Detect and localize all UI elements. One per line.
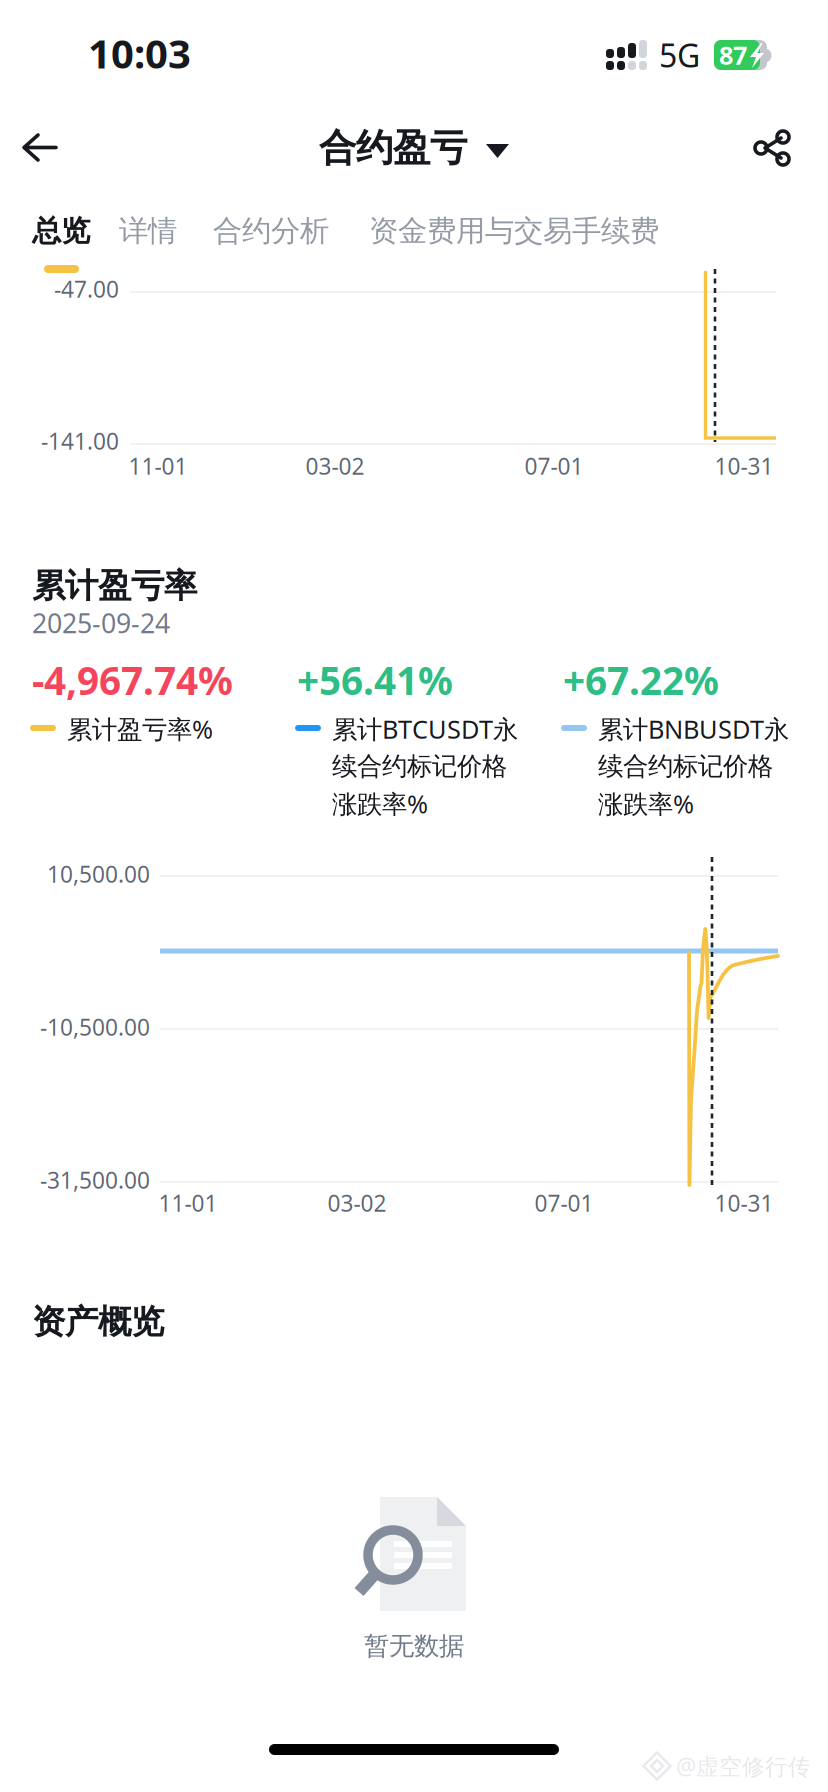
staticText: 10-31 bbox=[714, 451, 773, 481]
staticText: 详情 bbox=[119, 213, 177, 249]
staticText: 10-31 bbox=[714, 1188, 773, 1218]
staticText: -31,500.00 bbox=[40, 1165, 150, 1195]
staticText: 累计盈亏率 bbox=[32, 565, 197, 606]
staticText: 03-02 bbox=[305, 451, 364, 481]
staticText: 10:03 bbox=[88, 26, 191, 79]
staticText: 累计盈亏率% bbox=[67, 712, 213, 746]
button[interactable]: 详情 bbox=[0, 205, 92, 249]
staticText: +67.22% bbox=[563, 654, 719, 706]
staticText: 累计BTCUSDT永 bbox=[332, 712, 518, 746]
staticText: 续合约标记价格 bbox=[598, 751, 773, 782]
staticText: 合约分析 bbox=[213, 213, 329, 249]
staticText: 87 bbox=[719, 38, 747, 72]
staticText: 11-01 bbox=[128, 451, 187, 481]
staticText: +56.41% bbox=[297, 654, 453, 706]
staticText: -47.00 bbox=[54, 274, 119, 304]
button[interactable]: 合约盈亏 bbox=[0, 96, 252, 200]
staticText: 资金费用与交易手续费 bbox=[369, 213, 659, 249]
staticText: -10,500.00 bbox=[40, 1012, 150, 1042]
button[interactable]: 总览 bbox=[0, 205, 76, 291]
staticText: 5G bbox=[659, 34, 700, 76]
staticText: 11-01 bbox=[158, 1188, 217, 1218]
staticText: 合约盈亏 bbox=[319, 125, 467, 171]
staticText: 07-01 bbox=[534, 1188, 593, 1218]
button[interactable]: Back bbox=[0, 96, 80, 200]
button[interactable]: Share bbox=[0, 96, 76, 200]
staticText: 07-01 bbox=[524, 451, 583, 481]
staticText: @虚空修行传 bbox=[676, 1751, 811, 1781]
staticText: -141.00 bbox=[41, 426, 119, 456]
staticText: 续合约标记价格 bbox=[332, 751, 507, 782]
staticText: 累计BNBUSDT永 bbox=[598, 712, 789, 746]
staticText: 总览 bbox=[32, 213, 90, 249]
staticText: 2025-09-24 bbox=[32, 605, 170, 641]
staticText: 10,500.00 bbox=[47, 859, 150, 889]
staticText: 涨跌率% bbox=[332, 787, 428, 820]
staticText: -4,967.74% bbox=[32, 654, 233, 706]
staticText: 暂无数据 bbox=[364, 1630, 464, 1661]
button[interactable]: 合约分析 bbox=[0, 205, 150, 249]
staticText: 涨跌率% bbox=[598, 787, 694, 820]
staticText: 资产概览 bbox=[32, 1301, 164, 1342]
staticText: 03-02 bbox=[327, 1188, 386, 1218]
button[interactable]: 资金费用与交易手续费 bbox=[0, 205, 340, 249]
